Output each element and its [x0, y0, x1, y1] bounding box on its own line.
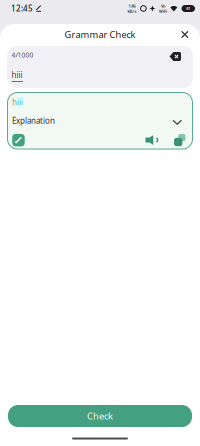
staticText: 81: [186, 6, 190, 11]
staticText: Explanation: [12, 115, 55, 126]
button[interactable]: Close: [182, 31, 200, 38]
staticText: Check: [87, 410, 113, 422]
button[interactable]: Edit: [12, 134, 24, 146]
staticText: Vo: [161, 3, 165, 8]
staticText: Grammar Check: [64, 28, 135, 41]
button[interactable]: Speak: [145, 135, 159, 146]
staticText: kB/s: [127, 8, 136, 14]
button[interactable]: Explanation: [7, 107, 193, 126]
button[interactable]: Copy: [174, 134, 185, 146]
button[interactable]: Clear text: [169, 50, 188, 61]
button[interactable]: Check: [0, 405, 200, 427]
staticText: 12:45: [11, 3, 33, 14]
staticText: 4/1000: [11, 50, 33, 59]
staticText: WiFi: [159, 8, 167, 14]
staticText: hiii: [11, 70, 22, 80]
staticText: hiii: [12, 97, 23, 107]
staticText: 1.86: [128, 3, 135, 8]
